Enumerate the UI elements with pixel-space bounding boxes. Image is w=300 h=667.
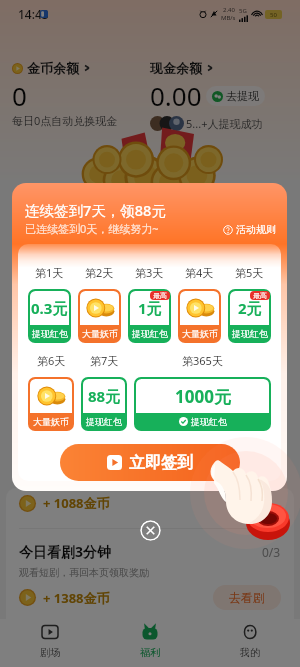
staticText: 大量妖币 [33,416,69,427]
staticText: 第2天 [85,265,114,280]
staticText: 今日看剧3分钟 [19,542,112,561]
button[interactable]: 福利 [100,619,200,667]
button[interactable]: 大量妖币 [30,379,72,429]
staticText: 提现红包 [191,416,227,427]
staticText: 提现红包 [32,328,68,339]
button[interactable]: 今日看剧3分钟 [19,542,281,561]
staticText: 第3天 [135,265,164,280]
button[interactable]: 大量妖币 [180,291,219,341]
staticText: 1000元 [175,385,231,408]
staticText: 活动规则 [236,223,276,236]
staticText: 去提现 [226,89,259,103]
button[interactable]: 去提现 [206,86,265,106]
button[interactable]: 88元 [83,379,125,429]
staticText: 第365天 [182,353,223,368]
staticText: + 1388金币 [43,589,110,607]
staticText: MB/s [221,14,236,22]
staticText: 0 [12,78,27,113]
staticText: 14:43 [18,6,49,22]
staticText: 50 [270,11,277,19]
button[interactable]: 活动规则 [223,223,276,236]
staticText: 连续签到7天，领88元 [25,200,166,220]
staticText: 第4天 [185,265,214,280]
staticText: 金币余额 [27,60,79,76]
button[interactable]: 0.3元 [30,291,69,341]
staticText: 现金余额 [150,60,202,76]
button[interactable]: 立即签到 [60,444,240,481]
staticText: 福利 [140,646,160,659]
staticText: 提现红包 [232,328,268,339]
staticText: + 1088金币 [43,494,110,512]
staticText: 第1天 [35,265,64,280]
staticText: 5G [239,7,247,15]
staticText: 2元 [238,298,262,318]
button[interactable]: 我的 [200,619,300,667]
staticText: 0.00 [150,78,202,113]
staticText: 2.40 [223,6,235,14]
button[interactable]: 剧场 [0,619,100,667]
staticText: 每日0点自动兑换现金 [12,113,118,128]
button[interactable]: 2元 [230,291,269,341]
staticText: 最高 [253,291,267,300]
staticText: 提现红包 [86,416,122,427]
staticText: 剧场 [40,646,60,659]
button[interactable]: Close [140,520,161,541]
staticText: 已连续签到0天，继续努力~ [25,221,159,236]
staticText: 1元 [138,298,162,318]
button[interactable]: 金币余额 [12,60,91,76]
button[interactable]: 去看剧 [213,585,281,610]
staticText: 我的 [240,646,260,659]
button[interactable]: 1000元 [136,379,269,429]
staticText: 5...+人提现成功 [186,116,263,131]
staticText: 最高 [153,291,167,300]
button[interactable]: 大量妖币 [80,291,119,341]
staticText: 立即签到 [129,453,193,473]
staticText: 大量妖币 [182,328,218,339]
staticText: 0.3元 [31,298,68,318]
staticText: 提现红包 [132,328,168,339]
staticText: 去看剧 [229,590,265,605]
staticText: 大量妖币 [82,328,118,339]
staticText: 观看短剧，再回本页领取奖励 [19,566,149,579]
staticText: 0/3 [262,544,281,560]
button[interactable]: 现金余额 [150,60,214,76]
staticText: 第6天 [37,353,66,368]
staticText: 88元 [88,386,121,406]
button[interactable]: 1元 [130,291,169,341]
staticText: 第7天 [90,353,119,368]
staticText: 第5天 [235,265,264,280]
